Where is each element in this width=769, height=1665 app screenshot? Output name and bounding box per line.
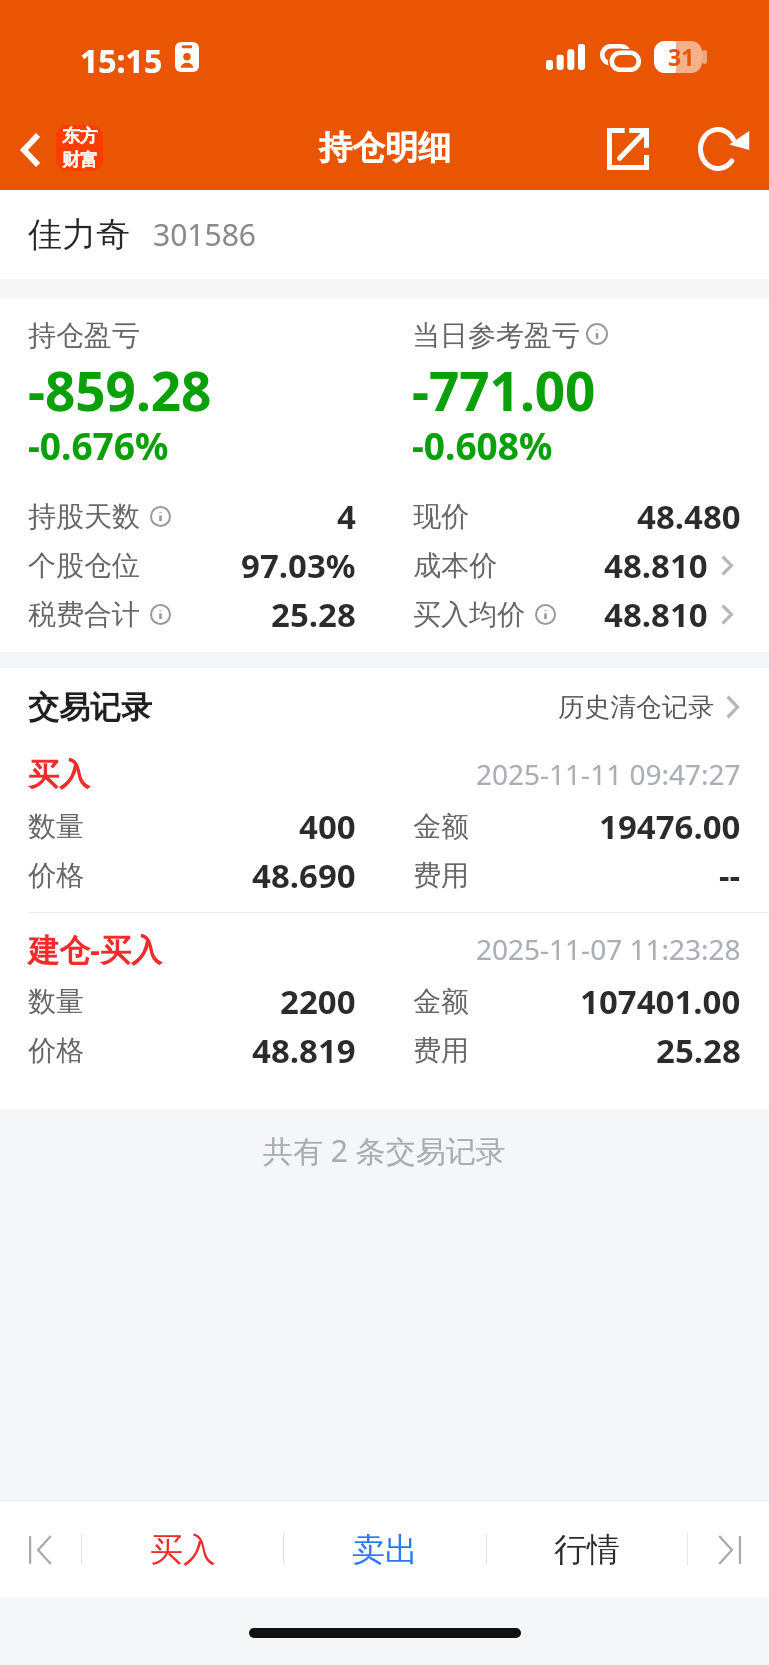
staticText: 2025-11-11 09:47:27 [476,755,741,793]
button[interactable]: Share [590,111,666,187]
staticText: 金额 [413,984,469,1019]
staticText: 107401.00 [580,979,741,1024]
staticText: 价格 [28,1033,84,1068]
button[interactable]: 历史清仓记录 [558,668,769,746]
staticText: 历史清仓记录 [558,691,714,724]
staticText: -0.676% [28,420,169,470]
staticText: 48.480 [637,494,741,539]
button[interactable]: 行情 [487,1501,687,1598]
staticText: -- [719,853,741,898]
staticText: 当日参考盈亏 [412,318,580,353]
staticText: 持仓明细 [319,127,451,169]
staticText: 买入均价 [413,597,525,632]
staticText: 成本价 [413,548,497,583]
button[interactable]: East Money [56,125,103,171]
staticText: 48.810 [604,543,708,588]
staticText: 买入 [150,1529,216,1571]
staticText: 费用 [413,858,469,893]
staticText: 25.28 [271,592,356,637]
staticText: -0.608% [412,420,553,470]
staticText: 共有 2 条交易记录 [263,1130,506,1171]
staticText: 卖出 [352,1529,418,1571]
staticText: 19476.00 [599,804,741,849]
button[interactable]: 卖出 [284,1501,486,1598]
staticText: 25.28 [656,1028,741,1073]
staticText: 建仓-买入 [28,928,162,970]
staticText: 数量 [28,984,84,1019]
button[interactable]: 买入 [82,1501,283,1598]
button[interactable]: 佳力奇 [0,190,769,279]
staticText: 48.819 [252,1028,356,1073]
staticText: -859.28 [28,354,212,426]
button[interactable]: Back [4,111,59,183]
staticText: 行情 [554,1529,620,1571]
staticText: 交易记录 [28,688,152,727]
staticText: 31 [668,41,695,72]
staticText: 东方 [62,125,98,148]
staticText: 税费合计 [28,597,140,632]
button[interactable]: First [0,1501,81,1598]
button[interactable]: Last [688,1501,769,1598]
staticText: 价格 [28,858,84,893]
staticText: 数量 [28,809,84,844]
staticText: 4 [337,494,356,539]
staticText: 400 [299,804,356,849]
button[interactable]: Refresh [684,111,760,187]
staticText: 48.810 [604,592,708,637]
staticText: 佳力奇 [28,213,130,256]
staticText: 2200 [280,979,356,1024]
staticText: 现价 [413,499,469,534]
staticText: 费用 [413,1033,469,1068]
staticText: -771.00 [412,354,596,426]
staticText: 持仓盈亏 [28,318,140,353]
staticText: 买入 [28,755,90,794]
staticText: 持股天数 [28,499,140,534]
staticText: 97.03% [241,543,356,588]
staticText: 财富 [62,149,98,171]
staticText: 301586 [153,214,256,255]
staticText: 48.690 [252,853,356,898]
staticText: 2025-11-07 11:23:28 [476,930,741,968]
staticText: 个股仓位 [28,548,140,583]
staticText: 金额 [413,809,469,844]
staticText: 15:15 [80,39,163,83]
